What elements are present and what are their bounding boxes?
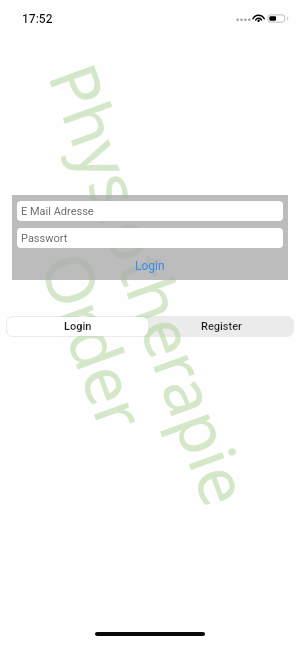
staticText: 17:52 (22, 12, 53, 26)
staticText: Physiotherapie (29, 51, 272, 517)
staticText: Login (135, 259, 165, 273)
staticText: E Mail Adresse (21, 205, 94, 218)
button[interactable]: Login (7, 317, 148, 336)
button[interactable]: Register (149, 316, 294, 337)
staticText: Order (21, 239, 169, 442)
button[interactable]: Login (12, 256, 288, 276)
staticText: Register (201, 320, 242, 333)
other: Status icons (234, 11, 288, 25)
staticText: Passwort (21, 232, 68, 245)
button[interactable]: Passwort (17, 228, 283, 248)
button[interactable]: E Mail Adresse (17, 201, 283, 221)
staticText: Login (64, 320, 92, 333)
